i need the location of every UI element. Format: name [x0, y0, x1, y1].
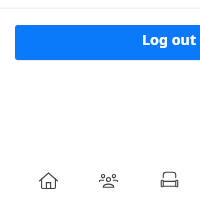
- staticText: Log out: [142, 30, 197, 49]
- button[interactable]: Log out: [15, 25, 200, 60]
- button[interactable]: Lounge: [149, 159, 189, 199]
- button[interactable]: Home: [28, 160, 68, 200]
- button[interactable]: Groups: [88, 160, 128, 200]
